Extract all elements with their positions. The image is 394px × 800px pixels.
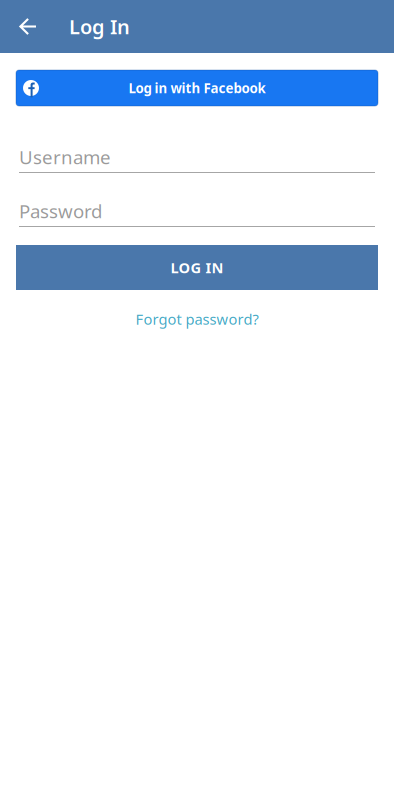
staticText: LOG IN [170, 258, 223, 277]
button[interactable]: Back [0, 0, 46, 53]
staticText: Log in with Facebook [128, 79, 265, 97]
staticText: Log In [69, 13, 130, 40]
staticText: Username [19, 145, 111, 169]
button[interactable]: Log in with Facebook [16, 70, 378, 106]
button[interactable]: Forgot password? [16, 302, 378, 336]
staticText: Password [19, 199, 102, 223]
button[interactable]: LOG IN [16, 245, 378, 290]
staticText: Forgot password? [135, 309, 258, 329]
